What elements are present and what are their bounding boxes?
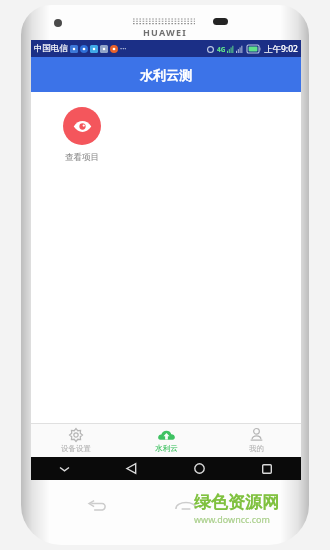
button[interactable]: Recents <box>233 457 301 480</box>
staticText: HUAWEI <box>143 26 187 38</box>
staticText: 绿色资源网 <box>194 492 279 513</box>
button[interactable]: Home <box>165 457 233 480</box>
staticText: 上午9:02 <box>264 43 298 55</box>
staticText: 4G <box>217 45 226 54</box>
staticText: www.downcc.com <box>194 513 270 525</box>
staticText: 水利云测 <box>140 67 192 83</box>
staticText: 我的 <box>249 444 264 453</box>
staticText: 中国电信 <box>34 43 68 54</box>
button[interactable]: 查看项目 <box>57 103 107 167</box>
staticText: 设备设置 <box>61 444 91 453</box>
staticText: 查看项目 <box>65 152 99 163</box>
button[interactable]: 设备设置 <box>31 425 121 456</box>
staticText: ··· <box>120 43 127 54</box>
button[interactable]: 我的 <box>211 425 301 456</box>
button[interactable]: 水利云 <box>121 426 211 456</box>
button[interactable]: Back <box>98 457 165 480</box>
button[interactable]: Hide <box>31 457 98 480</box>
staticText: 水利云 <box>155 444 178 453</box>
